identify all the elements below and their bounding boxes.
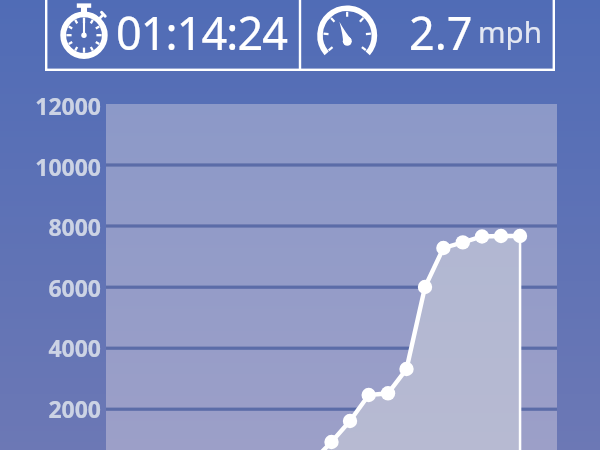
staticText: 2.7 [409,2,473,63]
staticText: 01:14:24 [116,2,287,63]
staticText: 4000 [17,332,101,363]
button[interactable]: Elapsed time 01:14:24 [47,0,298,69]
staticText: 2000 [17,393,101,424]
button[interactable]: Current speed 2.7 miles per hour [302,0,553,69]
staticText: 6000 [17,272,101,303]
staticText: 10000 [17,151,101,182]
staticText: 8000 [17,211,101,242]
staticText: mph [478,11,542,51]
staticText: 12000 [17,90,101,121]
